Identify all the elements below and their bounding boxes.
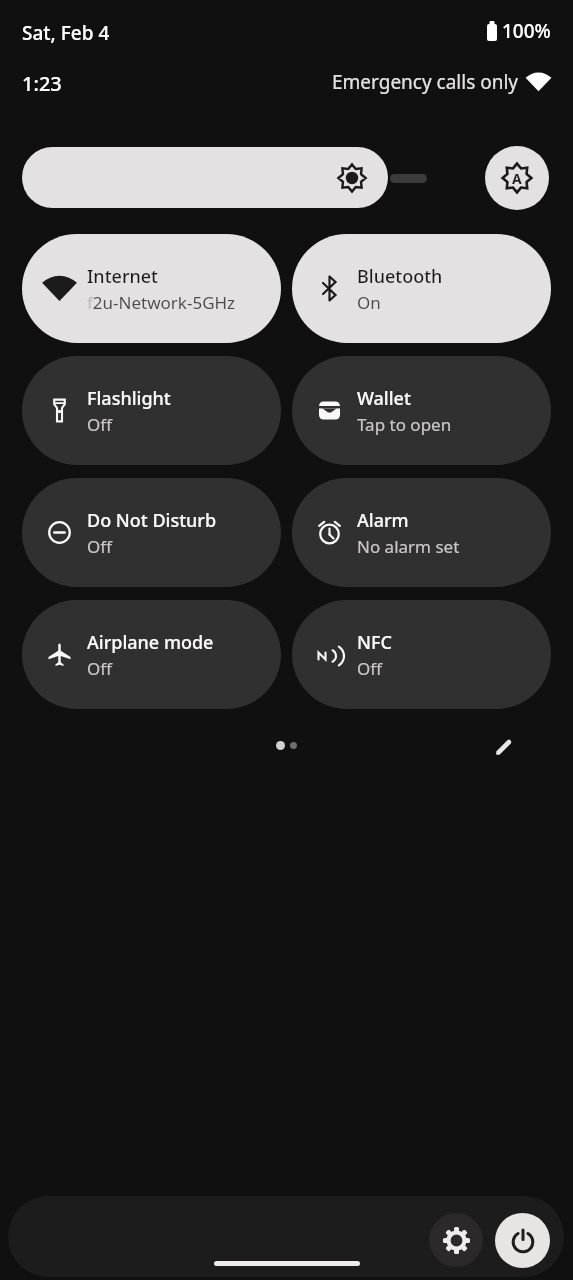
button[interactable]	[488, 731, 518, 761]
button[interactable]	[22, 147, 388, 208]
button[interactable]: Internet	[22, 234, 281, 343]
staticText: 1:23	[22, 70, 62, 97]
staticText: Internet	[87, 264, 159, 289]
button[interactable]: Wallet	[292, 356, 551, 465]
staticText: Bluetooth	[357, 264, 443, 289]
staticText: Emergency calls only	[332, 69, 519, 95]
button[interactable]: Bluetooth	[292, 234, 551, 343]
staticText: Off	[87, 535, 112, 558]
button[interactable]	[495, 1213, 550, 1268]
staticText: Sat, Feb 4	[22, 20, 110, 46]
staticText: Wallet	[357, 386, 411, 411]
staticText: Off	[87, 413, 112, 436]
staticText: NFC	[357, 630, 392, 655]
staticText: On	[357, 291, 381, 314]
staticText: Flashlight	[87, 386, 171, 411]
staticText: No alarm set	[357, 535, 460, 558]
staticText: Airplane mode	[87, 630, 214, 655]
staticText: Do Not Disturb	[87, 508, 217, 533]
staticText: 100%	[502, 18, 551, 44]
staticText: A	[512, 169, 522, 188]
staticText: f2u-Network-5GHz	[87, 291, 236, 314]
button[interactable]	[429, 1213, 483, 1267]
button[interactable]: Flashlight	[22, 356, 281, 465]
button[interactable]: Alarm	[292, 478, 551, 587]
button[interactable]: Airplane mode	[22, 600, 281, 709]
button[interactable]: Do Not Disturb	[22, 478, 281, 587]
button[interactable]: A	[485, 146, 549, 210]
staticText: Off	[87, 657, 112, 680]
staticText: Off	[357, 657, 382, 680]
staticText: Tap to open	[357, 413, 452, 436]
staticText: Alarm	[357, 508, 409, 533]
button[interactable]: NFC	[292, 600, 551, 709]
